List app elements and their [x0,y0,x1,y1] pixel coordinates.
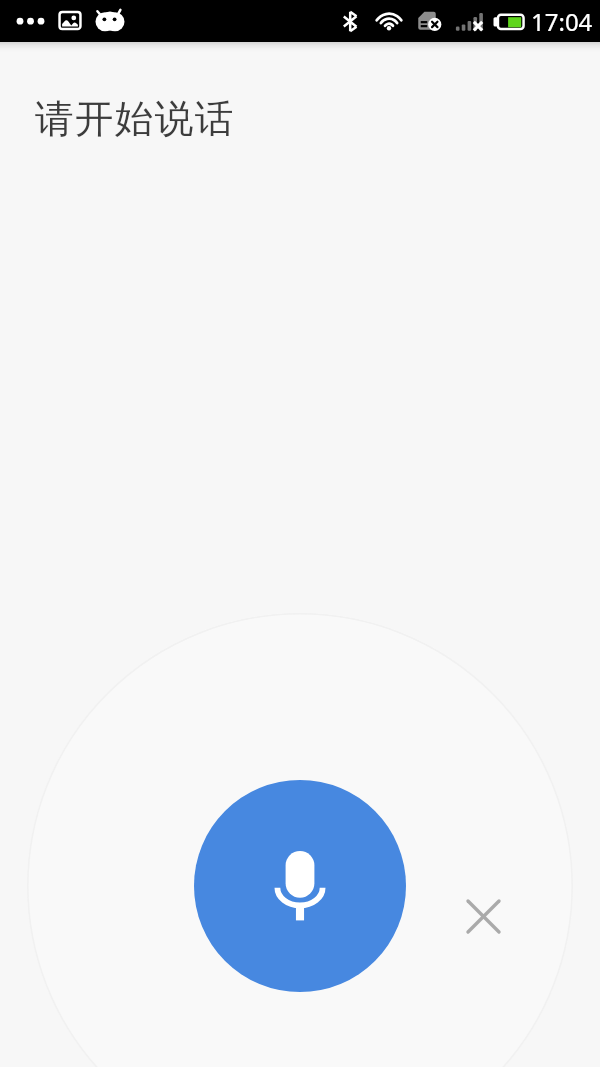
button[interactable]: Microphone [194,780,406,992]
staticText: 请开始说话 [34,95,234,144]
button[interactable]: Close [450,883,517,950]
staticText: 17:04 [531,5,593,38]
